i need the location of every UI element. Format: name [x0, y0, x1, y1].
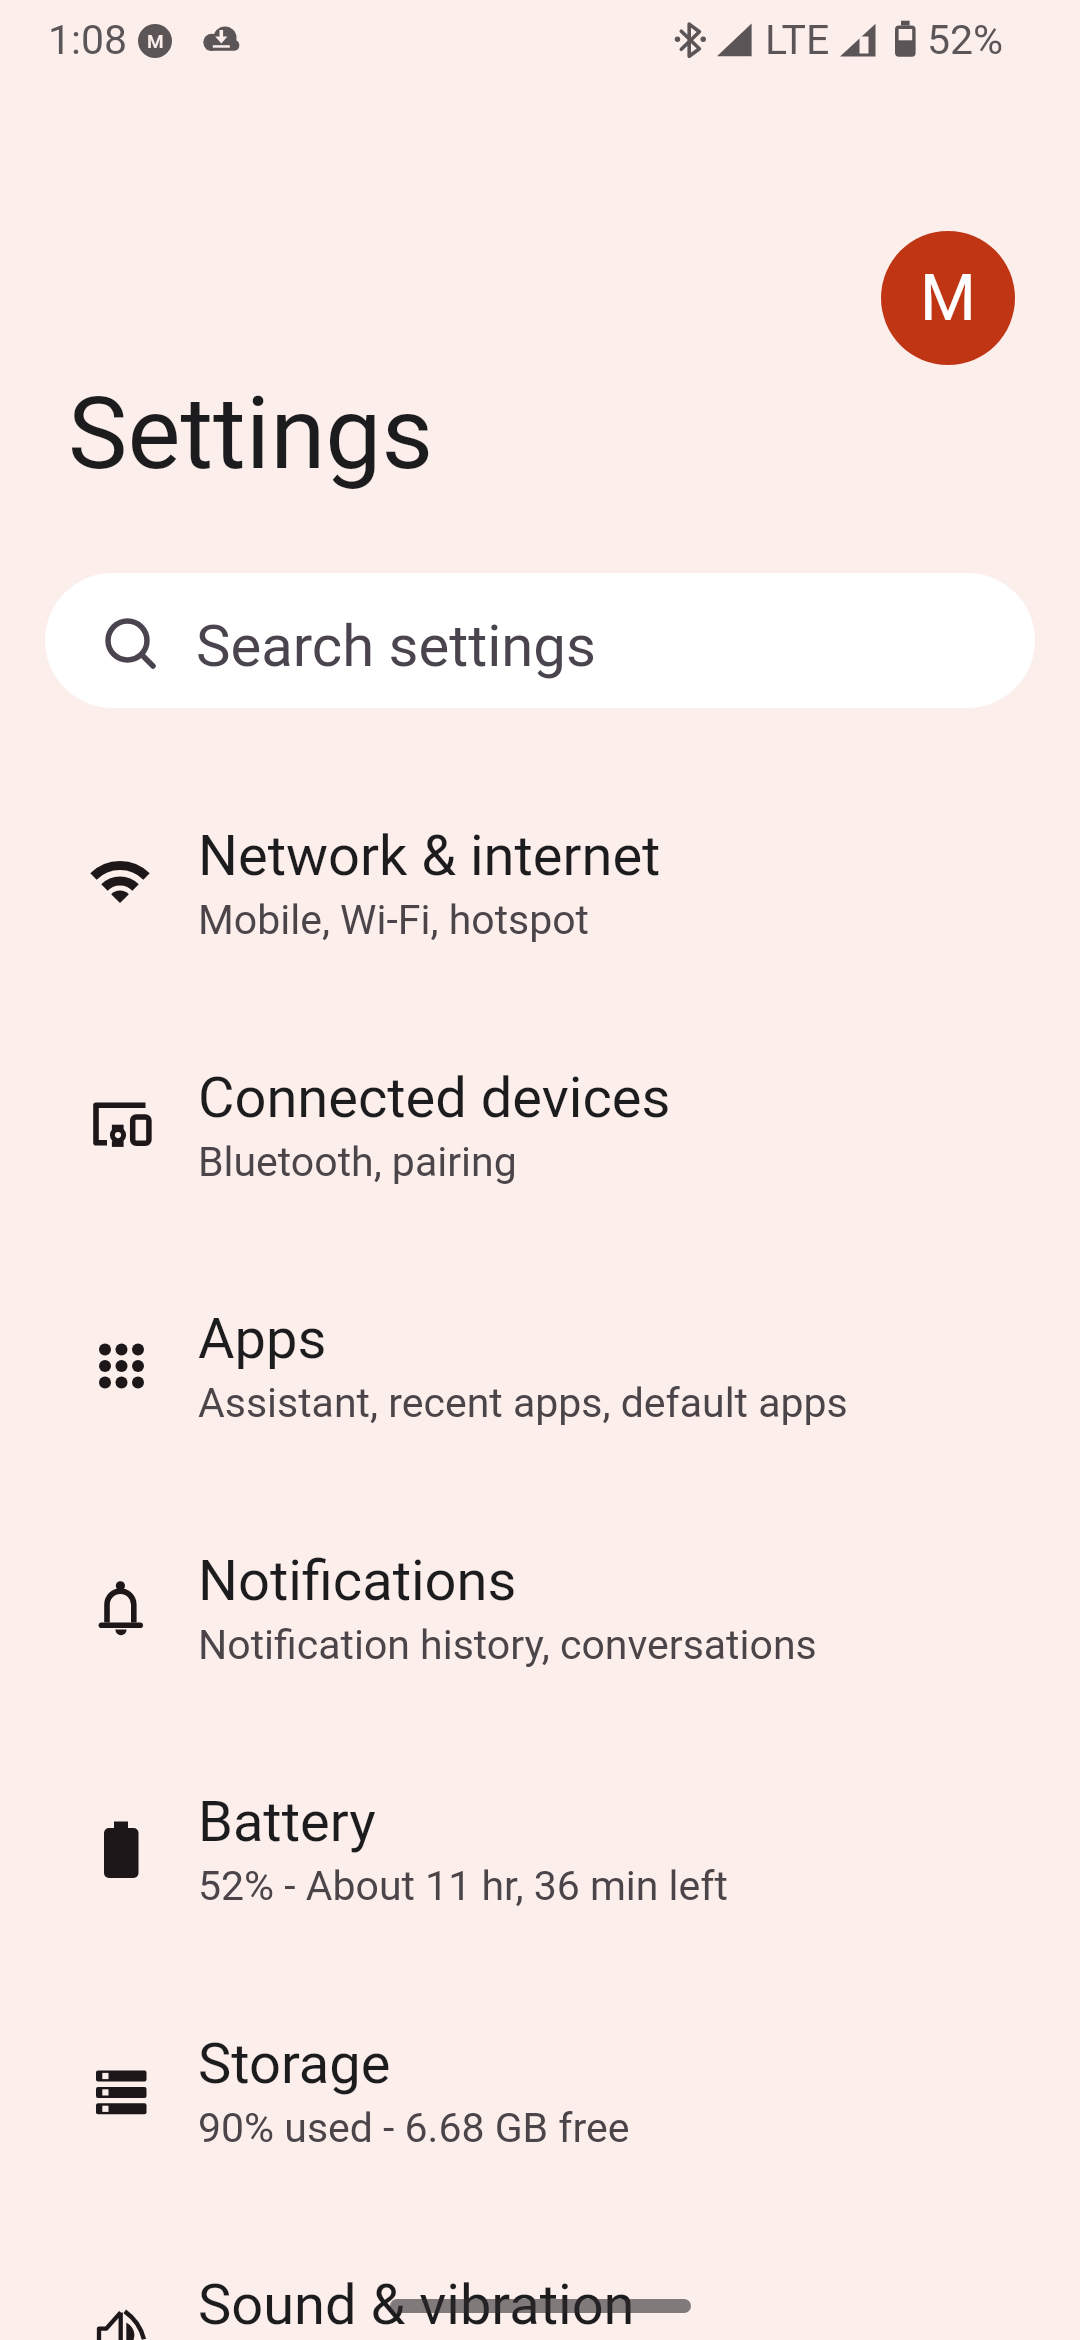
button[interactable]: Network & internet: [0, 762, 1080, 1003]
button[interactable]: Battery: [0, 1728, 1080, 1969]
staticText: 52%: [927, 16, 1004, 64]
staticText: 1:08: [48, 16, 128, 64]
staticText: 90% used - 6.68 GB free: [198, 2104, 630, 2152]
button[interactable]: Storage: [0, 1970, 1080, 2211]
button[interactable]: Sound & vibration: [0, 2211, 1080, 2340]
button[interactable]: M: [881, 231, 1015, 365]
staticText: Sound & vibration: [198, 2272, 635, 2338]
staticText: Bluetooth, pairing: [198, 1138, 517, 1186]
staticText: LTE: [765, 16, 830, 64]
staticText: 52% - About 11 hr, 36 min left: [198, 1862, 728, 1910]
button[interactable]: Search settings: [45, 573, 1035, 708]
staticText: Assistant, recent apps, default apps: [198, 1379, 848, 1427]
staticText: Notifications: [198, 1548, 517, 1614]
staticText: Battery: [198, 1789, 376, 1855]
staticText: Network & internet: [198, 823, 661, 889]
staticText: Search settings: [196, 612, 596, 680]
button[interactable]: Apps: [0, 1245, 1080, 1486]
button[interactable]: Connected devices: [0, 1004, 1080, 1245]
staticText: Settings: [68, 375, 434, 492]
staticText: Apps: [198, 1306, 327, 1372]
staticText: Mobile, Wi-Fi, hotspot: [198, 896, 590, 944]
staticText: M: [920, 261, 976, 336]
staticText: M: [147, 30, 164, 52]
staticText: Notification history, conversations: [198, 1621, 817, 1669]
staticText: Storage: [198, 2031, 391, 2097]
button[interactable]: Notifications: [0, 1487, 1080, 1728]
staticText: Connected devices: [198, 1065, 671, 1131]
